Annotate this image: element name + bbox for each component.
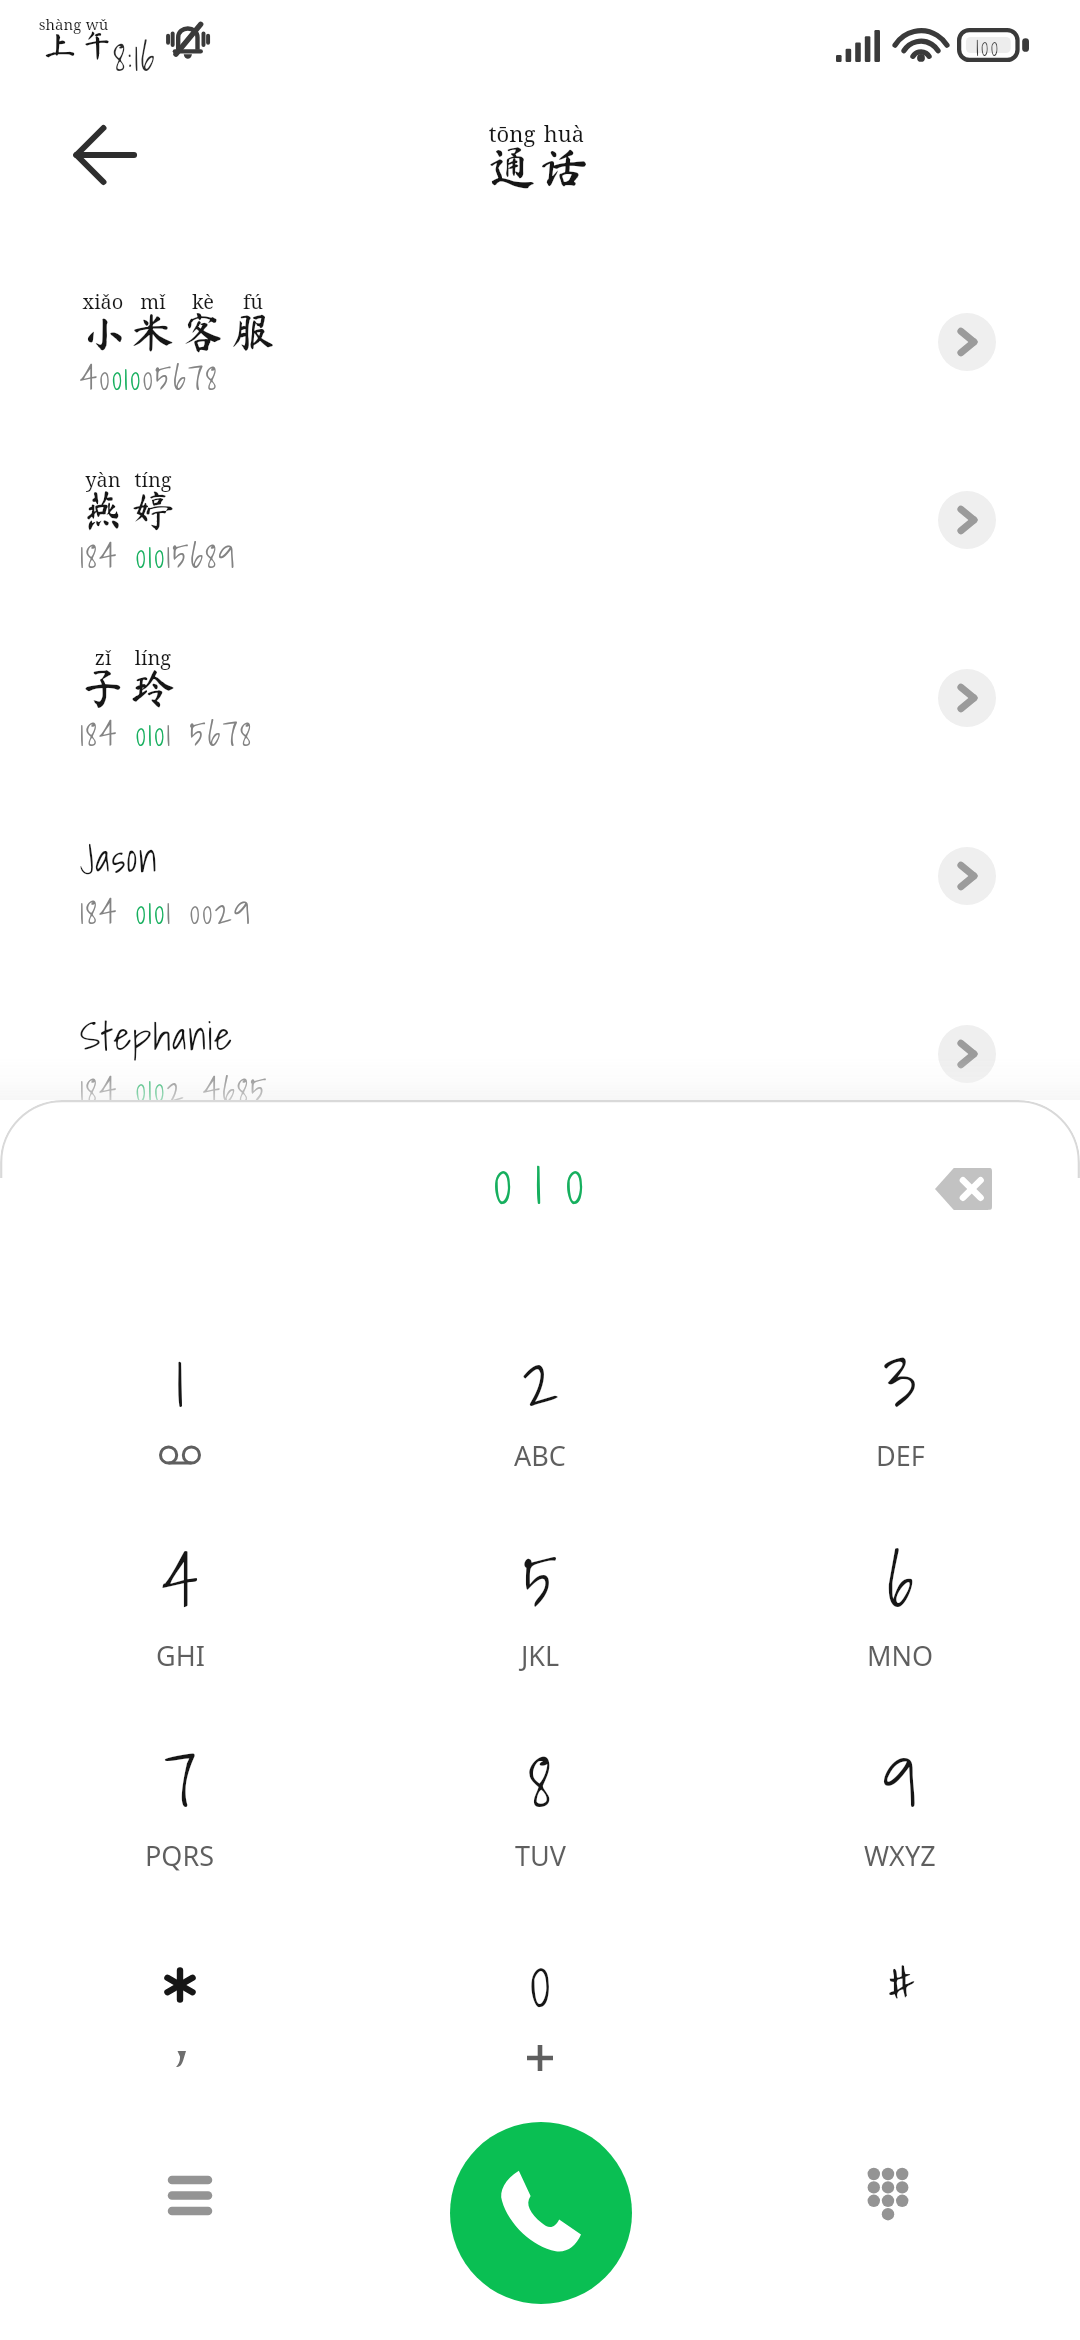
- button[interactable]: Key 1: [60, 1296, 300, 1476]
- button[interactable]: Key 0: [420, 1896, 660, 2076]
- staticText: 米: [128, 310, 178, 353]
- button[interactable]: yàn: [0, 443, 1080, 615]
- staticText: kè: [178, 288, 228, 315]
- staticText: zǐ: [78, 644, 128, 671]
- button[interactable]: Open contact details: [938, 491, 996, 549]
- button[interactable]: zǐ: [0, 621, 1080, 793]
- staticText: GHI: [156, 1637, 205, 1674]
- staticText: Stephanie: [80, 1005, 234, 1066]
- staticText: 4001005678: [80, 350, 219, 405]
- button[interactable]: Key 8: [420, 1696, 660, 1876]
- button[interactable]: Key #: [780, 1896, 1020, 2076]
- button[interactable]: Call: [450, 2122, 632, 2304]
- staticText: 1: [176, 1322, 185, 1438]
- button[interactable]: Dialpad: [828, 2140, 948, 2250]
- button[interactable]: Delete: [935, 1168, 992, 1210]
- button[interactable]: Stephanie: [0, 977, 1080, 1149]
- staticText: MNO: [867, 1637, 934, 1674]
- button[interactable]: Key 6: [780, 1496, 1020, 1676]
- staticText: 184 0102 4685: [80, 1062, 269, 1117]
- button[interactable]: Open contact details: [938, 669, 996, 727]
- staticText: 184 0101 0029: [80, 884, 253, 939]
- staticText: 客: [178, 310, 228, 353]
- staticText: 话: [538, 143, 590, 191]
- staticText: tíng: [128, 466, 178, 493]
- staticText: TUV: [515, 1837, 566, 1874]
- staticText: 上: [30, 29, 90, 61]
- staticText: 2: [522, 1322, 559, 1438]
- staticText: Jason: [80, 827, 159, 888]
- staticText: 010: [10, 1131, 1080, 1231]
- staticText: 7: [164, 1722, 197, 1838]
- staticText: 燕: [78, 488, 128, 531]
- staticText: #: [886, 1932, 914, 2032]
- button[interactable]: Key 4: [60, 1496, 300, 1676]
- staticText: PQRS: [145, 1837, 215, 1874]
- button[interactable]: Open contact details: [938, 313, 996, 371]
- staticText: 小: [78, 310, 128, 353]
- staticText: 184 01015689: [80, 528, 237, 583]
- staticText: wǔ: [76, 14, 118, 34]
- staticText: 8:16: [113, 26, 157, 87]
- staticText: huà: [538, 118, 590, 148]
- staticText: 8: [528, 1722, 552, 1838]
- staticText: mǐ: [128, 288, 178, 315]
- staticText: 0: [529, 1922, 552, 2038]
- staticText: 4: [162, 1522, 199, 1638]
- button[interactable]: Key 2: [420, 1296, 660, 1476]
- staticText: 100: [952, 27, 1024, 61]
- button[interactable]: Key 9: [780, 1696, 1020, 1876]
- staticText: 玲: [128, 666, 178, 709]
- staticText: 3: [883, 1322, 917, 1438]
- staticText: líng: [128, 644, 178, 671]
- staticText: 5: [523, 1522, 558, 1638]
- staticText: 6: [887, 1522, 914, 1638]
- staticText: 婷: [128, 488, 178, 531]
- button[interactable]: Key 7: [60, 1696, 300, 1876]
- staticText: 通: [486, 143, 538, 191]
- staticText: WXYZ: [864, 1837, 936, 1874]
- staticText: ABC: [514, 1437, 566, 1474]
- staticText: tōng: [486, 118, 538, 148]
- button[interactable]: Back: [54, 107, 156, 203]
- staticText: shàng: [30, 14, 90, 34]
- staticText: 午: [76, 29, 118, 61]
- button[interactable]: Key 5: [420, 1496, 660, 1676]
- button[interactable]: Open contact details: [938, 847, 996, 905]
- button[interactable]: Call history: [130, 2140, 250, 2250]
- staticText: 184 0101 5678: [80, 706, 254, 761]
- staticText: JKL: [521, 1637, 560, 1674]
- button[interactable]: Key 3: [780, 1296, 1020, 1476]
- button[interactable]: Open contact details: [938, 1025, 996, 1083]
- staticText: fú: [228, 288, 278, 315]
- staticText: 子: [78, 666, 128, 709]
- button[interactable]: Jason: [0, 799, 1080, 971]
- staticText: xiǎo: [78, 288, 128, 315]
- staticText: 服: [228, 310, 278, 353]
- staticText: yàn: [78, 466, 128, 493]
- button[interactable]: xiǎo: [0, 265, 1080, 437]
- staticText: DEF: [876, 1437, 925, 1474]
- staticText: 9: [883, 1722, 918, 1838]
- button[interactable]: Key *: [60, 1896, 300, 2076]
